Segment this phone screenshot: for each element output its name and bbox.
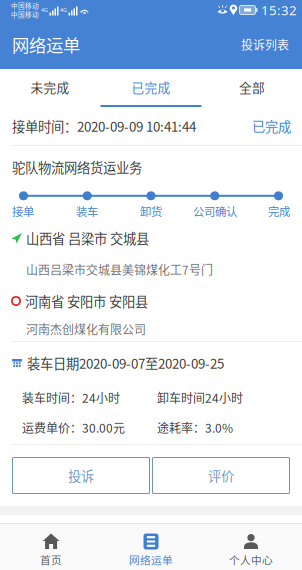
staticText: 河南省 安阳市 安阳县 [25,291,148,311]
staticText: 河南杰创煤化有限公司 [26,320,146,338]
button[interactable]: 投诉列表 [239,26,291,63]
button[interactable]: 已完成 [101,69,201,107]
staticText: 评价 [208,466,234,485]
staticText: 公司确认 [193,203,237,219]
staticText: 驼队物流网络货运业务 [12,157,142,177]
button[interactable]: 网络运单 [101,524,201,570]
button[interactable]: 未完成 [0,69,100,107]
staticText: 中国移动 [11,1,39,10]
button[interactable]: 个人中心 [201,524,301,570]
button[interactable]: 投诉 [12,457,149,493]
staticText: 运费单价：30.00元 [22,419,125,436]
button[interactable]: 评价 [152,457,289,493]
staticText: 15:32 [261,1,297,19]
staticText: 接单 [12,203,34,219]
staticText: 个人中心 [229,552,273,567]
staticText: 网络运单 [12,32,80,57]
staticText: 山西省 吕梁市 交城县 [26,228,149,248]
staticText: 山西吕梁市交城县美锦煤化工7号门 [26,261,213,278]
staticText: 途耗率：3.0% [157,419,233,436]
button[interactable]: 首页 [1,524,101,570]
staticText: 完成 [268,203,290,219]
staticText: 卸货 [140,203,162,219]
staticText: 未完成 [30,78,69,96]
staticText: 投诉 [68,466,94,485]
staticText: 全部 [239,78,265,96]
staticText: 首页 [40,552,62,567]
staticText: 4G [60,6,67,14]
staticText: 中国移动 [11,9,39,19]
staticText: 装车时间：24小时 [22,389,120,406]
button[interactable]: 全部 [202,69,302,107]
staticText: 装车日期2020-09-07至2020-09-25 [27,353,224,373]
staticText: 4G [41,6,48,14]
staticText: 网络运单 [129,552,173,567]
staticText: 接单时间：2020-09-09 10:41:44 [12,116,196,136]
staticText: 已完成 [131,78,170,96]
staticText: 投诉列表 [241,36,289,53]
staticText: 已完成 [252,116,291,136]
staticText: 卸车时间24小时 [157,389,243,406]
staticText: 装车 [76,203,98,219]
